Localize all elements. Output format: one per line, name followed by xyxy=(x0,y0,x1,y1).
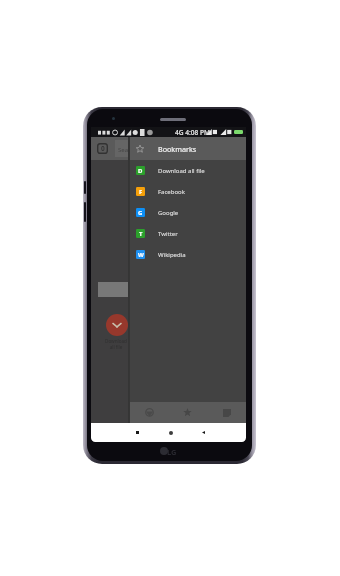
button[interactable]: Bookmarks xyxy=(130,137,246,160)
staticText: 4G 4:08 PM xyxy=(175,128,211,137)
staticText: 0 xyxy=(101,144,105,153)
button[interactable]: Pages xyxy=(207,402,246,423)
staticText: W xyxy=(138,251,144,259)
button[interactable]: Home xyxy=(154,423,188,442)
staticText: T xyxy=(139,230,143,238)
staticText: G xyxy=(138,209,143,217)
button[interactable]: F xyxy=(130,181,246,202)
staticText: Download all file xyxy=(158,167,205,175)
staticText: Facebook xyxy=(158,188,185,196)
staticText: Google xyxy=(158,209,179,217)
staticText: F xyxy=(139,188,143,196)
staticText: Twitter xyxy=(158,230,178,238)
button[interactable]: Bookmarks xyxy=(168,402,207,423)
button[interactable]: T xyxy=(130,223,246,244)
staticText: LG xyxy=(167,447,177,457)
button[interactable]: D xyxy=(130,160,246,181)
button[interactable]: Recents xyxy=(120,423,154,442)
button[interactable]: Search or type URL xyxy=(115,140,135,157)
button[interactable]: Back xyxy=(186,423,220,442)
button[interactable]: Home xyxy=(130,402,168,423)
staticText: Bookmarks xyxy=(158,144,197,154)
staticText: D xyxy=(138,167,143,175)
button[interactable]: Open tabs xyxy=(97,143,108,154)
staticText: Wikipedia xyxy=(158,251,186,259)
button[interactable]: G xyxy=(130,202,246,223)
staticText: Download all file xyxy=(97,338,135,350)
staticText: Sea xyxy=(118,146,129,154)
button[interactable]: W xyxy=(130,244,246,265)
